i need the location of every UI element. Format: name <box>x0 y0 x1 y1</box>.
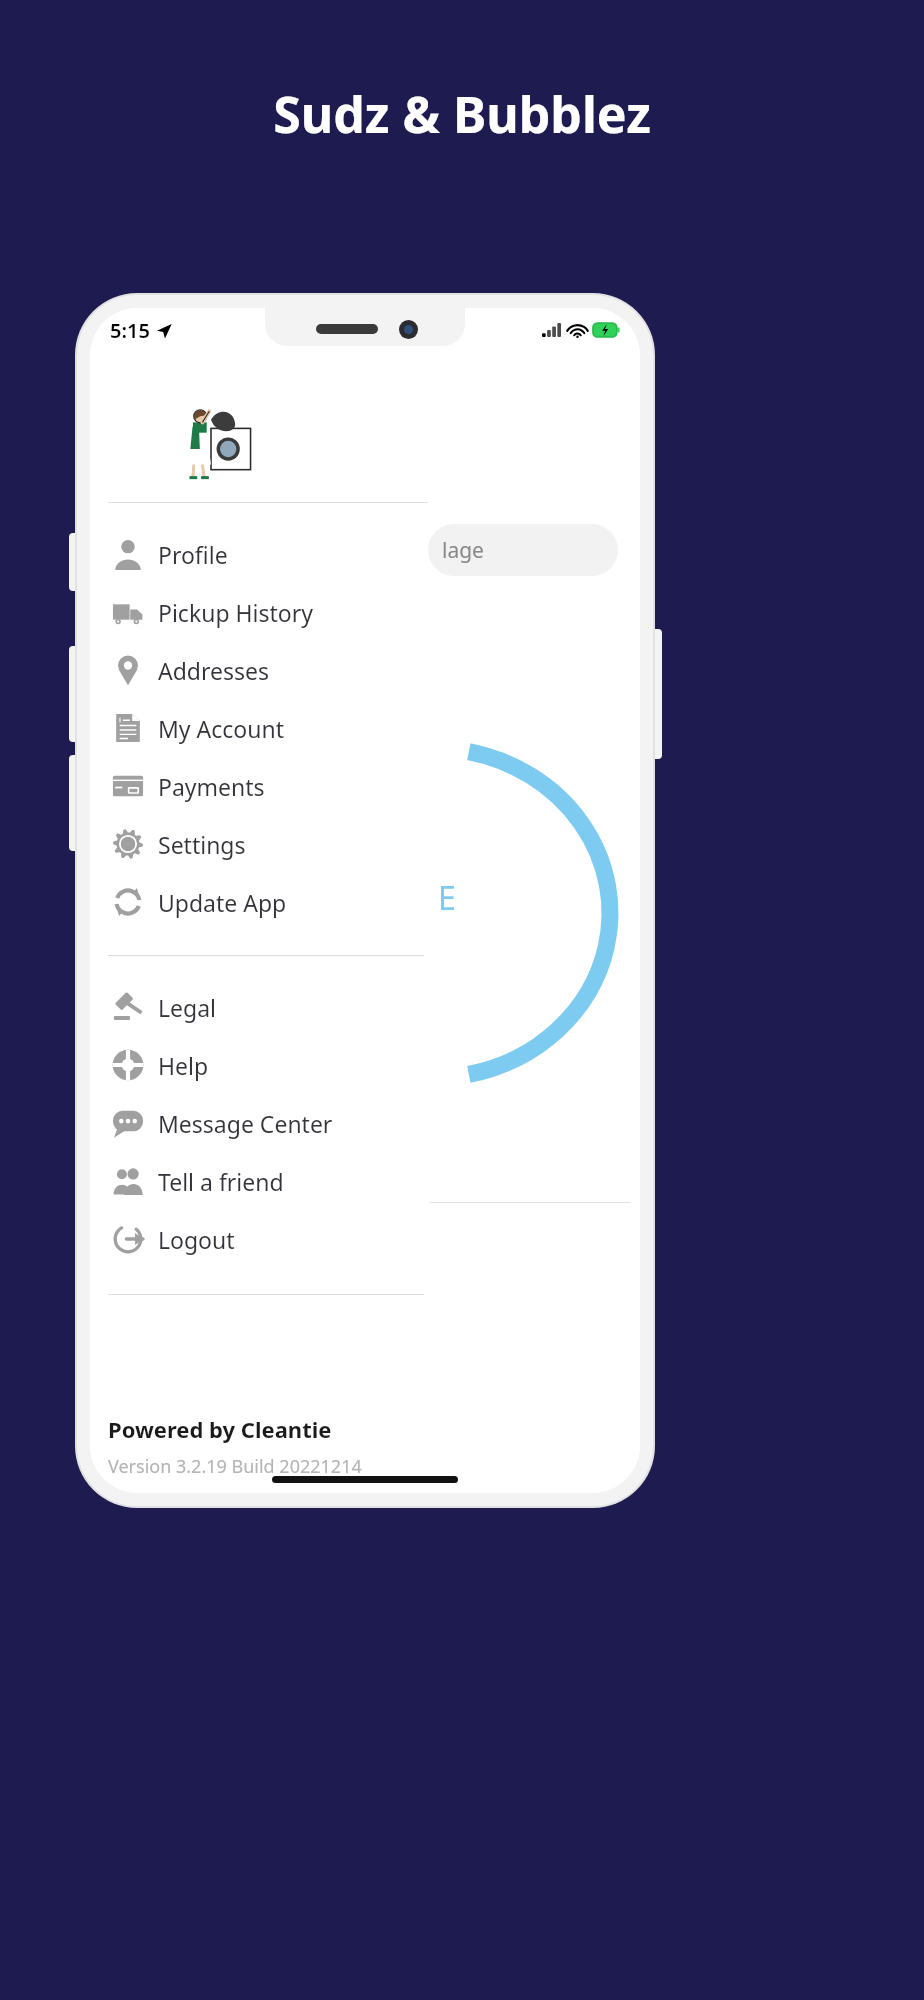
button[interactable]: Legal <box>90 978 428 1036</box>
button[interactable]: Profile <box>90 525 428 583</box>
button[interactable]: Payments <box>90 757 428 815</box>
button[interactable]: Pickup History <box>90 583 428 641</box>
staticText: Settings <box>158 829 246 860</box>
staticText: 5:15 <box>110 317 150 344</box>
staticText: Message Center <box>158 1108 333 1139</box>
staticText: Legal <box>158 992 217 1023</box>
button[interactable]: Tell a friend <box>90 1152 428 1210</box>
staticText: Logout <box>158 1224 235 1255</box>
staticText: lage <box>442 536 484 565</box>
staticText: E <box>438 876 456 920</box>
button[interactable]: Addresses <box>90 641 428 699</box>
staticText: Tell a friend <box>158 1166 284 1197</box>
staticText: My Account <box>158 713 284 744</box>
button[interactable]: My Account <box>90 699 428 757</box>
staticText: Version 3.2.19 Build 20221214 <box>108 1454 362 1479</box>
button[interactable]: lage <box>428 524 618 576</box>
button[interactable]: Help <box>90 1036 428 1094</box>
staticText: Payments <box>158 771 265 802</box>
button[interactable]: Logout <box>90 1210 428 1268</box>
button[interactable]: Settings <box>90 815 428 873</box>
staticText: Profile <box>158 539 228 570</box>
button[interactable]: Update App <box>90 873 428 931</box>
staticText: Powered by Cleantie <box>108 1414 332 1444</box>
staticText: Sudz & Bubblez <box>273 80 651 148</box>
staticText: Addresses <box>158 655 270 686</box>
staticText: Help <box>158 1050 209 1081</box>
button[interactable]: Message Center <box>90 1094 428 1152</box>
staticText: Pickup History <box>158 597 313 628</box>
staticText: Update App <box>158 887 287 918</box>
